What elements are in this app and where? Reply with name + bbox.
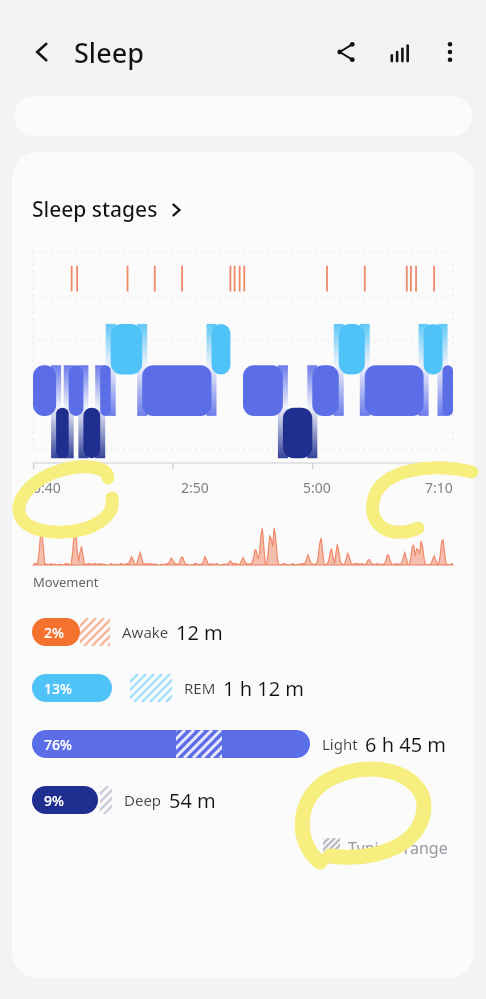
staticText: Movement [33, 573, 99, 591]
staticText: 13% [44, 679, 72, 698]
staticText: 5:00 [303, 478, 331, 497]
button[interactable]: 9% [32, 785, 474, 815]
staticText: 1 h 12 m [223, 675, 304, 702]
button[interactable]: 13% [32, 673, 474, 703]
staticText: Light [322, 734, 358, 754]
staticText: 7:10 [425, 478, 453, 497]
staticText: 6 h 45 m [365, 731, 446, 758]
staticText: 2:50 [181, 478, 209, 497]
staticText: Sleep [74, 34, 144, 71]
staticText: 9% [44, 791, 64, 810]
staticText: Typical range [348, 837, 448, 859]
staticText: Deep [124, 790, 162, 810]
staticText: 76% [44, 735, 72, 754]
staticText: 12 m [176, 619, 223, 646]
button[interactable]: Back [20, 30, 64, 74]
button[interactable]: Sleep stages [32, 195, 184, 224]
button[interactable]: 76% [32, 729, 474, 759]
button[interactable]: Share [324, 30, 368, 74]
staticText: 2% [44, 623, 64, 642]
staticText: Sleep stages [32, 195, 158, 224]
button[interactable]: More options [428, 30, 472, 74]
button[interactable]: Statistics [378, 30, 422, 74]
staticText: Awake [122, 622, 169, 642]
staticText: 0:40 [33, 478, 61, 497]
staticText: REM [184, 678, 216, 698]
button[interactable]: 2% [32, 617, 474, 647]
staticText: 54 m [169, 787, 216, 814]
